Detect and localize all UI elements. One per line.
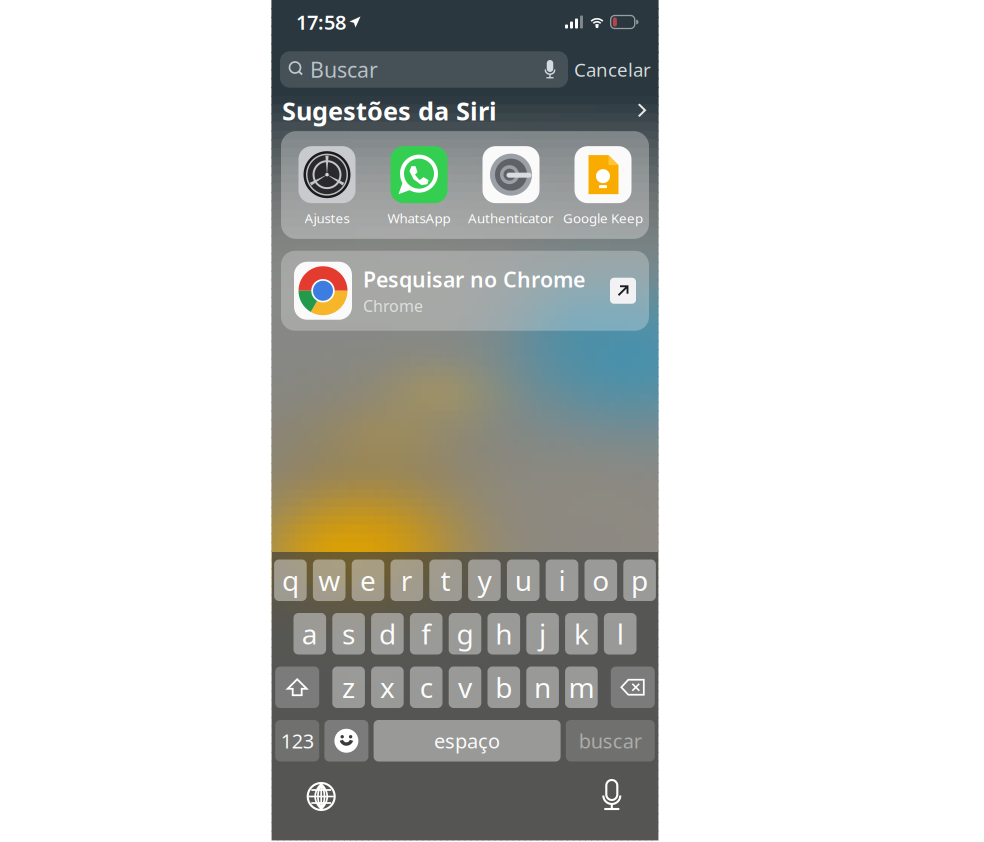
button[interactable]: o	[584, 559, 617, 601]
button[interactable]: m	[565, 666, 598, 708]
staticText: espaço	[434, 727, 500, 754]
button[interactable]: i	[546, 559, 578, 601]
button[interactable]: w	[313, 559, 345, 601]
button[interactable]: 123	[275, 720, 319, 761]
button[interactable]: h	[487, 613, 520, 654]
staticText: x	[380, 669, 395, 706]
button[interactable]: d	[371, 613, 404, 654]
button[interactable]: Emoji	[324, 720, 368, 761]
staticText: q	[282, 562, 299, 599]
staticText: j	[539, 615, 546, 652]
staticText: Sugestões da Siri	[282, 94, 497, 127]
button[interactable]: g	[449, 613, 481, 654]
staticText: buscar	[579, 727, 642, 754]
staticText: a	[302, 615, 318, 652]
staticText: b	[495, 669, 512, 706]
staticText: u	[515, 562, 532, 599]
staticText: 123	[281, 727, 314, 754]
button[interactable]: f	[410, 613, 442, 654]
staticText: e	[360, 562, 376, 599]
button[interactable]: n	[526, 666, 559, 708]
button[interactable]: c	[410, 666, 442, 708]
staticText: s	[342, 615, 355, 652]
button[interactable]: Pesquisar no Chrome	[272, 242, 658, 331]
staticText: l	[617, 615, 624, 652]
button[interactable]: a	[293, 613, 326, 654]
staticText: t	[441, 562, 451, 599]
staticText: f	[421, 615, 431, 652]
staticText: y	[477, 562, 491, 599]
staticText: Ajustes	[304, 209, 349, 227]
button[interactable]: buscar	[566, 720, 655, 761]
button[interactable]: j	[526, 613, 559, 654]
staticText: Authenticator	[468, 209, 554, 227]
button[interactable]: q	[274, 559, 307, 601]
button[interactable]: r	[390, 559, 423, 601]
staticText: Pesquisar no Chrome	[363, 265, 585, 293]
button[interactable]: Shift	[275, 666, 319, 708]
staticText: w	[318, 562, 340, 599]
button[interactable]: Ajustes	[281, 146, 373, 227]
button[interactable]: WhatsApp	[373, 146, 465, 227]
staticText: m	[568, 669, 594, 706]
staticText: o	[592, 562, 609, 599]
staticText: d	[379, 615, 396, 652]
button[interactable]: Cancelar	[574, 51, 651, 88]
staticText: WhatsApp	[387, 209, 450, 227]
button[interactable]: v	[449, 666, 481, 708]
staticText: r	[401, 562, 413, 599]
staticText: 17:58	[296, 9, 346, 35]
button[interactable]: Dictation	[597, 778, 627, 814]
staticText: z	[342, 669, 355, 706]
button[interactable]: b	[487, 666, 520, 708]
staticText: g	[456, 615, 473, 652]
button[interactable]: x	[371, 666, 404, 708]
staticText: Chrome	[363, 295, 423, 316]
button[interactable]: Delete	[611, 666, 655, 708]
staticText: n	[534, 669, 551, 706]
staticText: c	[420, 669, 433, 706]
button[interactable]: y	[468, 559, 501, 601]
button[interactable]: p	[623, 559, 656, 601]
staticText: v	[458, 669, 472, 706]
staticText: Google Keep	[563, 209, 643, 227]
button[interactable]: t	[429, 559, 462, 601]
button[interactable]: s	[332, 613, 365, 654]
staticText: Buscar	[310, 55, 378, 84]
button[interactable]: Next keyboard	[303, 778, 339, 814]
staticText: k	[574, 615, 589, 652]
button[interactable]: u	[507, 559, 539, 601]
staticText: h	[495, 615, 512, 652]
button[interactable]: Sugestões da Siri	[272, 88, 658, 133]
button[interactable]: k	[565, 613, 598, 654]
button[interactable]: espaço	[374, 720, 561, 761]
button[interactable]: l	[604, 613, 636, 654]
staticText: p	[631, 562, 648, 599]
staticText: Cancelar	[574, 57, 651, 82]
button[interactable]: Authenticator	[465, 146, 557, 227]
staticText: i	[558, 562, 565, 599]
button[interactable]: Google Keep	[557, 146, 649, 227]
button[interactable]: z	[332, 666, 365, 708]
button[interactable]: e	[352, 559, 384, 601]
